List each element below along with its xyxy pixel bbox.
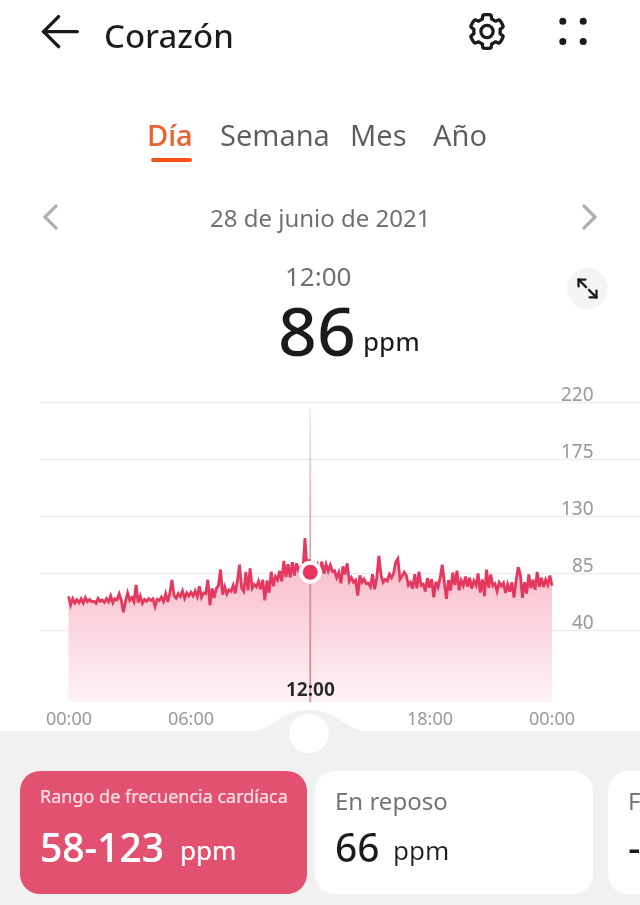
staticText: En reposo: [335, 784, 448, 817]
staticText: 58-123: [40, 820, 165, 873]
staticText: Día: [147, 115, 193, 154]
staticText: 220: [561, 381, 594, 407]
staticText: 86: [278, 283, 356, 376]
staticText: Año: [433, 115, 487, 154]
button[interactable]: Semana: [210, 115, 339, 167]
staticText: -: [628, 820, 640, 873]
staticText: 130: [561, 495, 594, 521]
staticText: 12:00: [285, 258, 352, 293]
staticText: 28 de junio de 2021: [210, 201, 431, 234]
staticText: 85: [572, 552, 594, 578]
staticText: 40: [572, 609, 594, 635]
button[interactable]: Expand chart: [567, 268, 608, 309]
staticText: 66: [335, 820, 380, 873]
staticText: 18:00: [407, 706, 454, 731]
button[interactable]: Previous day: [28, 194, 74, 240]
staticText: 06:00: [168, 706, 215, 731]
staticText: 00:00: [46, 706, 93, 731]
staticText: 175: [561, 438, 594, 464]
staticText: Rango de frecuencia cardíaca: [40, 784, 288, 809]
staticText: Corazón: [104, 13, 234, 58]
button[interactable]: En reposo: [315, 771, 593, 894]
staticText: ppm: [180, 832, 237, 867]
button[interactable]: Año: [420, 115, 500, 167]
button[interactable]: Mes: [338, 115, 418, 167]
button[interactable]: Expand details: [289, 714, 329, 754]
staticText: Semana: [220, 115, 330, 154]
button[interactable]: More options: [549, 7, 597, 55]
staticText: ppm: [393, 832, 450, 867]
staticText: ppm: [363, 323, 420, 358]
staticText: Frecuencia: [628, 784, 640, 817]
button[interactable]: Rango de frecuencia cardíaca: [20, 771, 307, 894]
button[interactable]: Frecuencia: [608, 771, 640, 894]
button[interactable]: Settings: [463, 7, 511, 55]
staticText: 00:00: [529, 706, 576, 731]
staticText: 12:00: [286, 676, 335, 702]
button[interactable]: Back: [36, 8, 84, 56]
button[interactable]: Día: [134, 115, 205, 167]
button[interactable]: Next day: [566, 194, 612, 240]
staticText: Mes: [350, 115, 407, 154]
